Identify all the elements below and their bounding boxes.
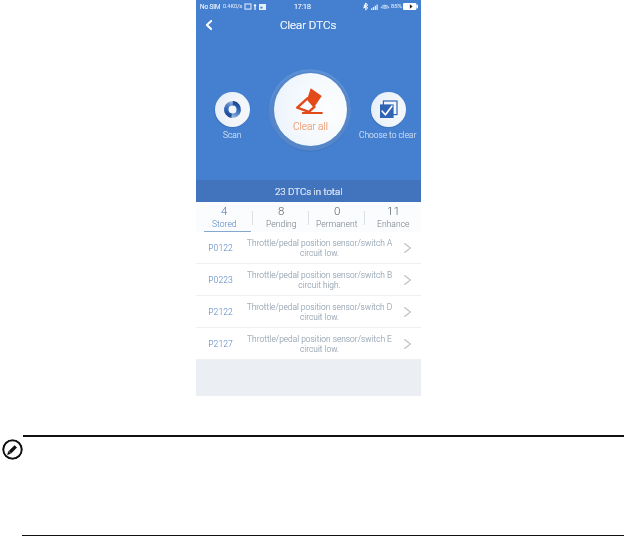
staticText: Enhance (377, 219, 410, 229)
staticText: Throttle/pedal position sensor/switch B … (245, 270, 394, 290)
button[interactable]: 0 (309, 202, 365, 232)
staticText: Choose to clear (359, 130, 417, 140)
staticText: 4 (221, 204, 228, 217)
button[interactable]: Clear all (274, 73, 347, 146)
button[interactable]: 11 (365, 202, 421, 232)
staticText: Clear all (293, 121, 328, 133)
staticText: Scan (223, 130, 242, 140)
staticText: Throttle/pedal position sensor/switch E … (245, 334, 394, 354)
staticText: Permanent (316, 219, 358, 229)
staticText: 8 (278, 204, 285, 217)
staticText: Clear DTCs (280, 18, 337, 31)
staticText: 0.4K0/s (223, 3, 243, 10)
staticText: 17:18 (294, 3, 311, 11)
button[interactable]: Edit (2, 439, 23, 460)
staticText: Throttle/pedal position sensor/switch D … (245, 302, 394, 322)
staticText: P0223 (196, 275, 245, 285)
staticText: P2127 (196, 339, 245, 349)
button[interactable]: 4 (196, 202, 253, 232)
button[interactable]: Choose to clear (351, 90, 425, 142)
staticText: 0 (334, 204, 341, 217)
staticText: P0122 (196, 243, 245, 253)
button[interactable]: P0223 (196, 264, 421, 295)
staticText: Throttle/pedal position sensor/switch A … (245, 238, 394, 258)
staticText: 11 (387, 204, 400, 217)
staticText: No SIM (200, 3, 221, 10)
staticText: P2122 (196, 307, 245, 317)
staticText: Stored (212, 219, 237, 229)
button[interactable]: Back (196, 13, 222, 36)
staticText: 85% (391, 3, 402, 10)
staticText: 23 DTCs in total (275, 186, 343, 197)
button[interactable]: P2122 (196, 296, 421, 327)
button[interactable]: 8 (253, 202, 309, 232)
button[interactable]: P0122 (196, 232, 421, 263)
button[interactable]: Scan (207, 90, 257, 142)
staticText: Pending (266, 219, 297, 229)
button[interactable]: P2127 (196, 328, 421, 359)
